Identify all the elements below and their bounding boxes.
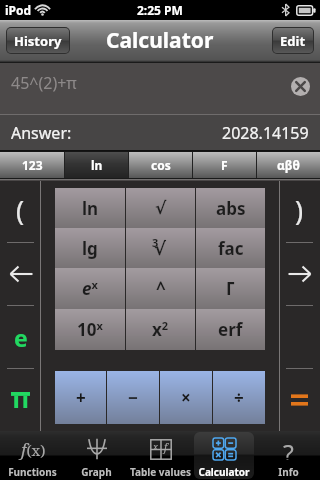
button[interactable]: Edit bbox=[273, 28, 313, 53]
staticText: ÷ bbox=[234, 386, 244, 409]
staticText: Info bbox=[278, 465, 299, 479]
button[interactable]: Pi bbox=[0, 369, 41, 431]
button[interactable]: ex bbox=[55, 268, 125, 309]
staticText: 45^(2)+π bbox=[11, 72, 77, 94]
staticText: abs bbox=[216, 197, 246, 220]
staticText: ex bbox=[82, 277, 98, 300]
staticText: ? bbox=[283, 436, 294, 460]
staticText: erf bbox=[218, 318, 243, 341]
staticText: √ bbox=[154, 238, 167, 259]
staticText: 2028.14159 bbox=[222, 122, 309, 144]
staticText: iPod bbox=[5, 2, 32, 18]
staticText: 123 bbox=[22, 157, 43, 173]
staticText: ln bbox=[82, 197, 99, 220]
button[interactable]: × bbox=[160, 371, 212, 424]
button[interactable]: √ bbox=[126, 188, 195, 228]
staticText: cos bbox=[151, 157, 171, 173]
staticText: αβθ bbox=[277, 157, 300, 173]
staticText: x2 bbox=[152, 318, 169, 341]
staticText: × bbox=[181, 386, 191, 409]
button[interactable]: ln bbox=[55, 188, 125, 228]
button[interactable]: Euler number e bbox=[0, 306, 41, 368]
button[interactable]: F bbox=[193, 152, 256, 178]
staticText: Graph bbox=[81, 465, 112, 479]
button[interactable]: − bbox=[107, 371, 159, 424]
staticText: ^ bbox=[156, 277, 166, 300]
button[interactable]: x bbox=[128, 431, 192, 480]
staticText: − bbox=[128, 386, 138, 409]
button[interactable]: abs bbox=[196, 188, 265, 228]
button[interactable]: lg bbox=[55, 228, 125, 268]
staticText: F bbox=[221, 157, 228, 173]
button[interactable]: Key bbox=[279, 306, 320, 368]
staticText: + bbox=[76, 386, 86, 409]
button[interactable]: Γ bbox=[196, 268, 265, 309]
staticText: ln bbox=[91, 157, 103, 173]
staticText: Calculator bbox=[198, 465, 250, 479]
staticText: Answer: bbox=[11, 122, 72, 144]
button[interactable]: + bbox=[55, 371, 106, 424]
staticText: fac bbox=[218, 237, 244, 260]
staticText: Γ bbox=[226, 277, 235, 300]
staticText: 2:25 PM bbox=[137, 2, 183, 18]
button[interactable]: Move cursor left bbox=[0, 243, 41, 305]
staticText: f bbox=[164, 440, 168, 454]
button[interactable]: √ bbox=[126, 228, 195, 268]
button[interactable]: erf bbox=[196, 309, 265, 350]
button[interactable]: Equals bbox=[279, 369, 320, 431]
button[interactable]: Right parenthesis bbox=[279, 181, 320, 242]
button[interactable]: ln bbox=[65, 152, 128, 178]
staticText: f(x) bbox=[21, 438, 46, 461]
staticText: x bbox=[153, 440, 158, 452]
button[interactable]: ^ bbox=[126, 268, 195, 309]
button[interactable]: ÷ bbox=[213, 371, 265, 424]
staticText: e bbox=[14, 322, 28, 353]
staticText: Functions bbox=[8, 465, 57, 479]
staticText: ) bbox=[295, 192, 304, 229]
staticText: Edit bbox=[280, 32, 306, 50]
button[interactable]: f(x) bbox=[0, 431, 64, 480]
button[interactable]: αβθ bbox=[257, 152, 320, 178]
staticText: Calculator bbox=[106, 26, 214, 55]
staticText: Table values bbox=[130, 465, 191, 479]
button[interactable]: 123 bbox=[0, 152, 64, 178]
staticText: √ bbox=[155, 198, 167, 218]
button[interactable]: Clear bbox=[291, 77, 310, 96]
staticText: 10x bbox=[77, 318, 103, 341]
button[interactable]: ? bbox=[256, 431, 320, 480]
staticText: lg bbox=[82, 237, 98, 260]
button[interactable]: Calculator bbox=[192, 431, 256, 480]
staticText: 3 bbox=[152, 235, 159, 250]
button[interactable]: History bbox=[7, 28, 69, 53]
button[interactable]: Left parenthesis bbox=[0, 181, 41, 242]
staticText: ( bbox=[16, 192, 25, 229]
button[interactable]: Move cursor right bbox=[279, 243, 320, 305]
button[interactable]: fac bbox=[196, 228, 265, 268]
button[interactable]: cos bbox=[129, 152, 192, 178]
staticText: History bbox=[14, 32, 62, 50]
button[interactable]: x2 bbox=[126, 309, 195, 350]
button[interactable]: Graph bbox=[64, 431, 128, 480]
button[interactable]: 10x bbox=[55, 309, 125, 350]
